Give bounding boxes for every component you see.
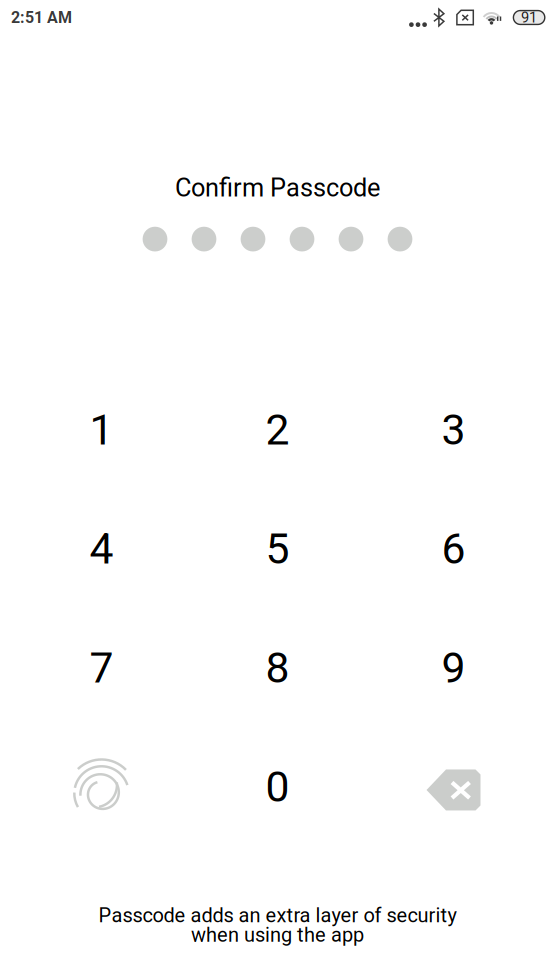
button[interactable]: 5 xyxy=(189,489,365,608)
staticText: 6 xyxy=(441,524,465,574)
staticText: Confirm Passcode xyxy=(175,173,380,203)
button[interactable]: Unlock with fingerprint xyxy=(13,727,189,846)
staticText: 1 xyxy=(89,405,113,455)
staticText: 91 xyxy=(521,9,537,26)
button[interactable]: 7 xyxy=(13,608,189,727)
button[interactable]: 9 xyxy=(365,608,541,727)
staticText: 3 xyxy=(441,405,465,455)
staticText: Passcode adds an extra layer of security xyxy=(98,904,456,927)
staticText: when using the app xyxy=(191,923,364,947)
staticText: 2 xyxy=(265,405,289,455)
button[interactable]: 4 xyxy=(13,489,189,608)
button[interactable]: 1 xyxy=(13,370,189,489)
button[interactable]: 0 xyxy=(189,727,365,846)
staticText: 9 xyxy=(441,643,465,693)
button[interactable]: 3 xyxy=(365,370,541,489)
staticText: 4 xyxy=(89,524,113,574)
button[interactable]: Delete xyxy=(365,727,541,846)
staticText: 0 xyxy=(265,762,289,812)
staticText: 8 xyxy=(265,643,289,693)
staticText: 7 xyxy=(89,643,113,693)
staticText: 5 xyxy=(265,524,289,574)
staticText: 2:51 AM xyxy=(11,8,72,27)
button[interactable]: 6 xyxy=(365,489,541,608)
button[interactable]: 8 xyxy=(189,608,365,727)
button[interactable]: 2 xyxy=(189,370,365,489)
